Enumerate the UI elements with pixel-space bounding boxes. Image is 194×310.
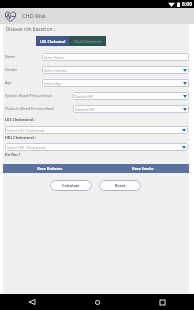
staticText: LDL Cholesterol :	[5, 117, 35, 122]
button[interactable]: Systolic BP	[73, 92, 189, 100]
staticText: Reset	[115, 183, 126, 188]
staticText: Systolic Blood Pressure(top)	[5, 93, 52, 98]
button[interactable]: Select Age	[42, 79, 189, 87]
button[interactable]: Have Smoke	[96, 164, 189, 173]
button[interactable]: Select HDL Cholesterol	[5, 143, 188, 151]
button[interactable]: Have Diabetes	[3, 164, 96, 173]
staticText: Diastolic Blood Pressure(low)	[5, 106, 54, 111]
button[interactable]: Recents	[151, 294, 173, 310]
staticText: Disease risk based on :	[6, 26, 56, 32]
staticText: Name	[5, 54, 16, 59]
button[interactable]: Back	[21, 294, 43, 310]
button[interactable]: Select Gender	[42, 66, 189, 74]
staticText: Gender	[5, 67, 18, 72]
button[interactable]: Reset	[99, 180, 141, 191]
button[interactable]: Select LDL Cholesterol	[5, 126, 188, 134]
staticText: Calculate	[62, 183, 80, 188]
staticText: HDL Cholesterol :	[5, 135, 36, 140]
staticText: Do You ?	[5, 152, 21, 157]
button[interactable]: Diastolic BP	[73, 105, 189, 113]
staticText: Systolic BP	[75, 94, 94, 99]
staticText: Have Diabetes	[37, 166, 63, 171]
staticText: Select LDL Cholesterol	[7, 128, 45, 133]
staticText: LDL Cholestrol	[40, 39, 66, 44]
button[interactable]: Home	[86, 294, 108, 310]
staticText: CHD Risk	[22, 12, 46, 20]
staticText: Select Age	[44, 81, 62, 86]
button[interactable]: Calculate	[50, 180, 92, 191]
staticText: Have Smoke	[132, 166, 154, 171]
button[interactable]: LDL Cholestrol	[36, 36, 69, 46]
staticText: Select HDL Cholesterol	[7, 145, 46, 150]
button[interactable]: Total Cholestrol	[69, 36, 106, 46]
staticText: Diastolic BP	[75, 107, 95, 112]
button[interactable]: Enter Name	[42, 53, 189, 61]
staticText: Enter Name	[44, 55, 65, 60]
staticText: Total Cholestrol	[74, 39, 102, 44]
staticText: Age	[5, 80, 12, 85]
staticText: Select Gender	[44, 68, 68, 73]
staticText: 6:00	[182, 1, 192, 8]
